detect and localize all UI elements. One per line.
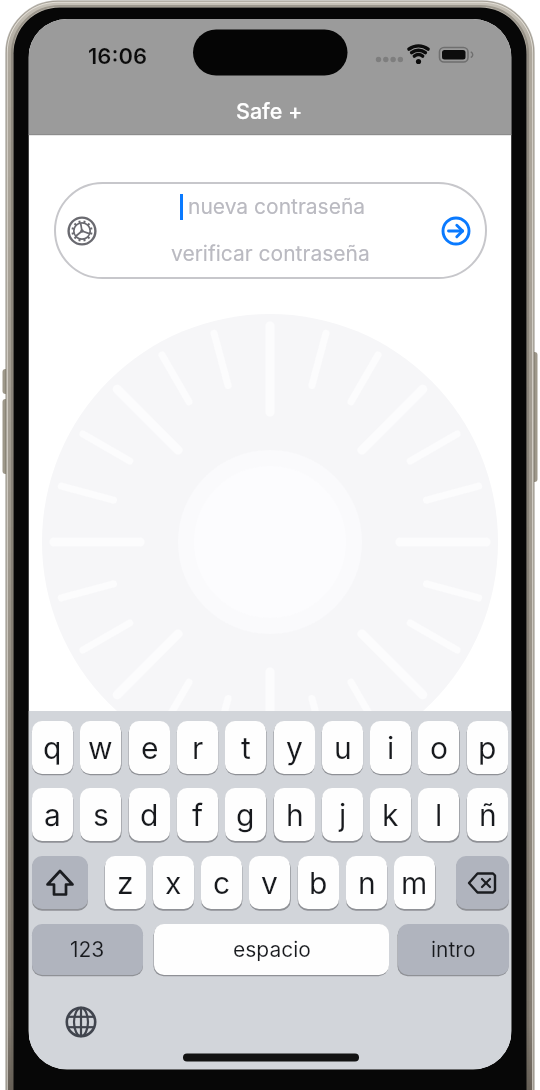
button[interactable]: m <box>394 856 435 909</box>
staticText: b <box>309 865 328 901</box>
staticText: espacio <box>233 937 311 962</box>
staticText: k <box>382 797 399 833</box>
button[interactable]: e <box>129 721 170 774</box>
staticText: g <box>236 797 255 833</box>
staticText: 123 <box>70 937 105 962</box>
button[interactable] <box>66 215 98 247</box>
staticText: w <box>88 730 113 766</box>
button[interactable]: x <box>153 856 194 909</box>
button[interactable]: u <box>322 721 363 774</box>
staticText: q <box>43 730 62 766</box>
button[interactable]: g <box>225 788 266 841</box>
staticText: s <box>93 797 109 833</box>
button[interactable]: z <box>105 856 146 909</box>
staticText: verificar contraseña <box>171 241 370 266</box>
button[interactable]: n <box>346 856 387 909</box>
button[interactable]: r <box>177 721 218 774</box>
button[interactable]: c <box>201 856 242 909</box>
button[interactable]: 123 <box>32 924 143 975</box>
staticText: v <box>261 865 278 901</box>
staticText: r <box>192 730 204 766</box>
staticText: n <box>358 865 376 901</box>
button[interactable]: b <box>298 856 339 909</box>
staticText: p <box>478 730 497 766</box>
button[interactable]: ñ <box>467 788 508 841</box>
button[interactable]: intro <box>398 924 509 975</box>
button[interactable]: s <box>80 788 121 841</box>
button[interactable] <box>62 1003 100 1041</box>
staticText: m <box>401 865 428 901</box>
button[interactable]: a <box>32 788 73 841</box>
staticText: x <box>165 865 182 901</box>
button[interactable]: o <box>418 721 459 774</box>
button[interactable]: p <box>467 721 508 774</box>
staticText: z <box>117 865 134 901</box>
button[interactable]: j <box>322 788 363 841</box>
staticText: e <box>141 730 159 766</box>
button[interactable]: h <box>274 788 315 841</box>
staticText: nueva contraseña <box>188 194 366 219</box>
staticText: t <box>241 730 251 766</box>
staticText: o <box>430 730 448 766</box>
staticText: d <box>140 797 159 833</box>
button[interactable] <box>54 182 487 279</box>
staticText: h <box>286 797 304 833</box>
staticText: 16:06 <box>88 43 147 70</box>
button[interactable]: l <box>418 788 459 841</box>
staticText: Safe + <box>236 98 303 124</box>
button[interactable]: q <box>32 721 73 774</box>
button[interactable]: f <box>177 788 218 841</box>
staticText: i <box>387 730 395 766</box>
button[interactable]: i <box>370 721 411 774</box>
button[interactable]: k <box>370 788 411 841</box>
staticText: u <box>334 730 352 766</box>
staticText: ñ <box>479 797 497 833</box>
button[interactable]: espacio <box>154 924 389 975</box>
button[interactable] <box>441 216 471 246</box>
button[interactable] <box>32 856 88 909</box>
staticText: intro <box>431 937 476 962</box>
staticText: f <box>192 797 204 833</box>
button[interactable]: y <box>274 721 315 774</box>
button[interactable] <box>456 856 509 909</box>
staticText: c <box>213 865 231 901</box>
staticText: y <box>286 730 303 766</box>
staticText: l <box>435 797 443 833</box>
staticText: a <box>44 797 61 833</box>
staticText: j <box>339 797 347 833</box>
button[interactable]: t <box>225 721 266 774</box>
button[interactable]: d <box>129 788 170 841</box>
button[interactable]: w <box>80 721 121 774</box>
button[interactable]: v <box>249 856 290 909</box>
